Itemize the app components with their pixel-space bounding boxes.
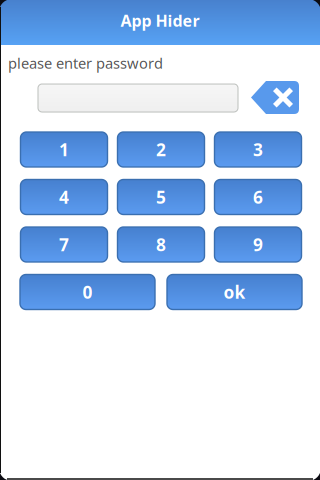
button[interactable]: 1 (20, 132, 107, 167)
button[interactable]: 2 (117, 132, 204, 167)
button[interactable]: 0 (20, 274, 155, 309)
staticText: 5 (156, 185, 166, 208)
staticText: App Hider (120, 10, 199, 31)
staticText: 0 (82, 280, 92, 303)
staticText: 9 (253, 233, 263, 256)
button[interactable]: 3 (214, 132, 301, 167)
staticText: 7 (59, 233, 69, 256)
staticText: ok (223, 280, 245, 303)
staticText: 6 (253, 185, 263, 208)
button[interactable]: ok (167, 274, 302, 309)
staticText: 4 (59, 185, 69, 208)
staticText: please enter password (8, 53, 163, 73)
staticText: 3 (253, 138, 263, 161)
button[interactable]: 4 (20, 179, 107, 214)
button[interactable]: 9 (214, 227, 301, 262)
staticText: 2 (156, 138, 166, 161)
staticText: 8 (156, 233, 166, 256)
button[interactable]: 6 (214, 179, 301, 214)
button[interactable]: 5 (117, 179, 204, 214)
button[interactable]: 7 (20, 227, 107, 262)
button[interactable]: 8 (117, 227, 204, 262)
button[interactable]: Password (38, 84, 238, 112)
button[interactable]: Delete (251, 81, 299, 114)
staticText: 1 (59, 138, 69, 161)
